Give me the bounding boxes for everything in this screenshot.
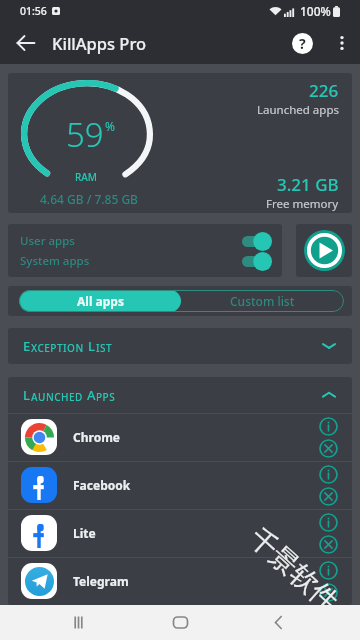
staticText: 226 bbox=[309, 79, 339, 102]
staticText: PPS bbox=[96, 390, 116, 404]
button[interactable]: Kill app bbox=[317, 437, 339, 459]
button[interactable]: L bbox=[8, 377, 352, 413]
button[interactable]: Navigate up bbox=[0, 22, 52, 64]
button[interactable]: App info bbox=[317, 511, 339, 533]
button[interactable]: Kill apps bbox=[296, 224, 352, 277]
button[interactable]: Kill app bbox=[317, 485, 339, 507]
button[interactable]: App info bbox=[317, 559, 339, 581]
staticText: User apps bbox=[20, 233, 75, 249]
staticText: Facebook bbox=[73, 477, 131, 493]
button[interactable]: Recents bbox=[58, 605, 98, 640]
staticText: 01:56 bbox=[20, 4, 47, 18]
button[interactable]: Back bbox=[258, 605, 298, 640]
staticText: KillApps Pro bbox=[52, 32, 147, 54]
staticText: Lite bbox=[73, 525, 96, 541]
staticText: Launched apps bbox=[257, 102, 339, 118]
button[interactable]: Facebook bbox=[8, 461, 352, 509]
button[interactable]: Custom list bbox=[181, 290, 344, 312]
button[interactable]: All apps bbox=[19, 290, 181, 312]
button[interactable]: Telegram bbox=[8, 557, 352, 605]
staticText: Telegram bbox=[73, 573, 129, 589]
button[interactable]: Kill app bbox=[317, 533, 339, 555]
button[interactable]: E bbox=[8, 328, 352, 364]
button[interactable]: Home bbox=[160, 605, 200, 640]
button[interactable]: System apps bbox=[20, 250, 272, 272]
staticText: % bbox=[105, 118, 115, 134]
staticText: 100% bbox=[300, 3, 331, 19]
button[interactable]: App info bbox=[317, 463, 339, 485]
button[interactable]: Kill app bbox=[317, 581, 339, 603]
staticText: Custom list bbox=[230, 293, 295, 309]
staticText: 59 bbox=[66, 112, 104, 157]
staticText: System apps bbox=[20, 253, 90, 269]
button[interactable]: Help bbox=[280, 22, 324, 64]
staticText: Chrome bbox=[73, 429, 120, 445]
button[interactable]: App info bbox=[317, 415, 339, 437]
staticText: AUNCHED bbox=[31, 390, 83, 404]
staticText: A bbox=[83, 386, 96, 404]
staticText: 3.21 GB bbox=[277, 173, 339, 196]
button[interactable]: Chrome bbox=[8, 413, 352, 461]
staticText: L bbox=[84, 337, 96, 355]
staticText: ? bbox=[299, 34, 306, 53]
staticText: IST bbox=[96, 341, 113, 355]
staticText: XCEPTION bbox=[31, 341, 84, 355]
staticText: E bbox=[23, 337, 31, 355]
staticText: Free memory bbox=[266, 196, 339, 212]
button[interactable]: User apps bbox=[20, 230, 272, 252]
staticText: 千景软件 bbox=[242, 521, 345, 619]
staticText: All apps bbox=[77, 293, 124, 309]
staticText: L bbox=[23, 386, 31, 404]
staticText: 4.64 GB / 7.85 GB bbox=[40, 191, 138, 207]
button[interactable]: More options bbox=[324, 22, 360, 64]
button[interactable]: Lite bbox=[8, 509, 352, 557]
staticText: RAM bbox=[75, 170, 98, 184]
